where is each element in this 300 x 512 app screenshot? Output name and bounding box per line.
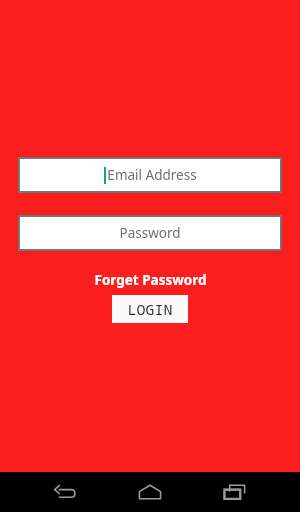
button[interactable]: Back bbox=[43, 472, 87, 512]
button[interactable]: LOGIN bbox=[112, 295, 188, 323]
button[interactable]: Home bbox=[128, 472, 172, 512]
button[interactable]: Password bbox=[18, 215, 282, 251]
staticText: Password bbox=[119, 224, 181, 242]
button[interactable]: Email Address bbox=[18, 157, 282, 193]
button[interactable]: Forget Password bbox=[90, 270, 211, 290]
staticText: Email Address bbox=[107, 166, 197, 184]
staticText: LOGIN bbox=[127, 299, 173, 319]
staticText: Forget Password bbox=[94, 271, 207, 289]
button[interactable]: Recent apps bbox=[213, 472, 257, 512]
